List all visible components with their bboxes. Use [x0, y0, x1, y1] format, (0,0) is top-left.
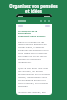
staticText: Dans un monde où les informations afflue…: [18, 40, 50, 95]
button[interactable]: Le pouvoir de la perception comment nous…: [16, 14, 52, 95]
staticText: Le pouvoir de la perception comment nous…: [18, 29, 50, 38]
staticText: Organisez vos pensées et idées: [0, 3, 67, 14]
